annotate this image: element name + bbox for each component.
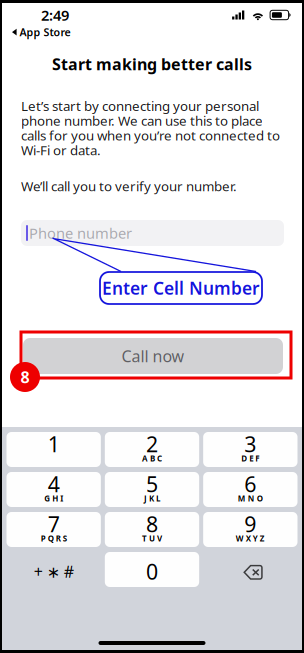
staticText: 2:49 — [41, 5, 69, 25]
staticText: 9 — [244, 510, 256, 538]
button[interactable]: 8 — [105, 512, 199, 547]
staticText: Phone number — [29, 223, 132, 243]
staticText: App Store — [20, 25, 71, 39]
staticText: P Q R S — [41, 533, 67, 544]
staticText: D E F — [241, 453, 259, 464]
staticText: Enter Cell Number — [102, 276, 260, 299]
staticText: 8 — [20, 366, 29, 388]
button[interactable]: Call now — [23, 338, 283, 374]
staticText: W X Y Z — [236, 533, 265, 544]
staticText: 8 — [146, 510, 158, 538]
button[interactable]: 2 — [105, 432, 199, 467]
staticText: 4 — [48, 470, 60, 498]
staticText: + ∗ # — [34, 561, 74, 582]
staticText: 0 — [146, 557, 158, 586]
button[interactable]: Delete — [203, 552, 297, 587]
staticText: 5 — [146, 470, 158, 498]
button[interactable]: 0 — [105, 552, 199, 587]
staticText: Let’s start by connecting your personal … — [21, 97, 280, 159]
staticText: 6 — [244, 470, 256, 498]
button[interactable]: 1 — [6, 432, 101, 467]
staticText: Start making better calls — [52, 53, 252, 75]
staticText: 7 — [48, 510, 60, 538]
staticText: Call now — [121, 345, 184, 367]
button[interactable]: plus star hash — [6, 552, 101, 587]
staticText: G H I — [44, 493, 63, 504]
button[interactable]: 5 — [105, 472, 199, 507]
button[interactable]: 7 — [6, 512, 101, 547]
staticText: A B C — [142, 453, 162, 464]
staticText: 3 — [244, 430, 256, 458]
staticText: T U V — [142, 533, 162, 544]
button[interactable]: 6 — [203, 472, 297, 507]
staticText: We’ll call you to verify your number. — [21, 177, 237, 195]
button[interactable]: Back to App Store — [12, 25, 76, 38]
staticText: M N O — [238, 493, 263, 504]
button[interactable]: 9 — [203, 512, 297, 547]
button[interactable]: 4 — [6, 472, 101, 507]
button[interactable]: 3 — [203, 432, 297, 467]
staticText: J K L — [144, 493, 160, 504]
staticText: 2 — [146, 430, 158, 458]
staticText: 1 — [48, 430, 60, 458]
